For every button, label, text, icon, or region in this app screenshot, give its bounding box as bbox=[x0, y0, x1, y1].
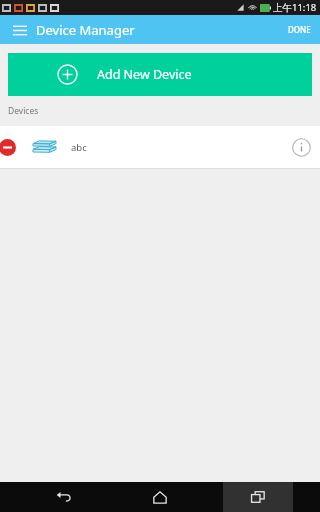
staticText: Devices bbox=[8, 105, 39, 117]
button[interactable]: Device info bbox=[288, 134, 314, 160]
staticText: 上午11:18 bbox=[273, 1, 317, 14]
staticText: Device Manager bbox=[36, 21, 135, 39]
staticText: Add New Device bbox=[97, 66, 192, 83]
button[interactable]: DONE bbox=[279, 15, 320, 44]
button[interactable]: Open navigation menu bbox=[8, 18, 32, 42]
staticText: DONE bbox=[288, 24, 311, 35]
button[interactable]: Delete device bbox=[0, 126, 320, 168]
button[interactable]: Back bbox=[28, 482, 98, 512]
button[interactable]: Home bbox=[125, 482, 195, 512]
button[interactable]: Recent apps bbox=[223, 482, 293, 512]
button[interactable]: Add New Device bbox=[8, 53, 312, 96]
staticText: abc bbox=[71, 141, 87, 154]
button[interactable]: Delete device bbox=[0, 134, 20, 160]
